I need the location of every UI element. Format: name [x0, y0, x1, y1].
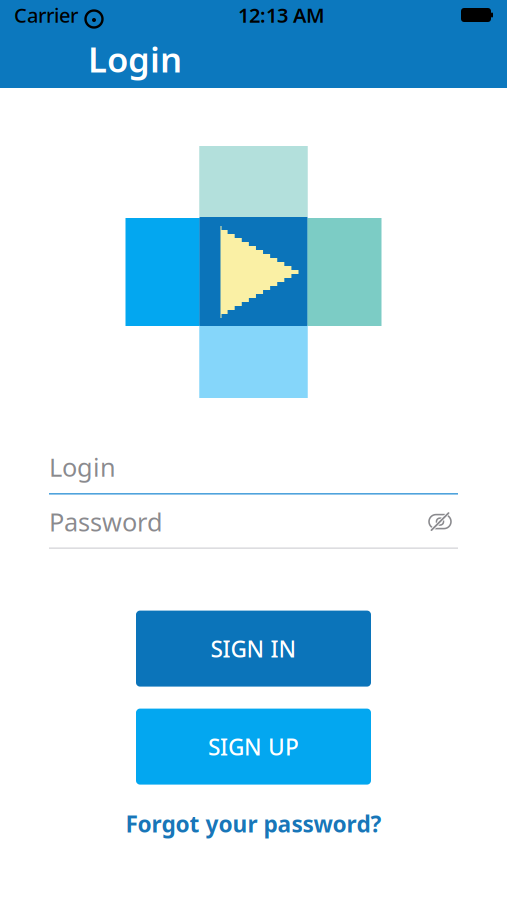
staticText: Login [49, 450, 116, 484]
button[interactable]: SIGN UP [136, 709, 371, 785]
staticText: SIGN UP [208, 731, 299, 762]
staticText: Login [88, 36, 182, 82]
staticText: Carrier [14, 2, 78, 28]
staticText: 12:13 AM [238, 2, 325, 28]
button[interactable]: SIGN IN [136, 611, 371, 687]
staticText: SIGN IN [210, 633, 296, 664]
staticText: Password [49, 505, 163, 538]
button[interactable]: Forgot your password? [113, 803, 393, 845]
staticText: Forgot your password? [125, 809, 381, 839]
button[interactable]: Show password [422, 506, 458, 538]
